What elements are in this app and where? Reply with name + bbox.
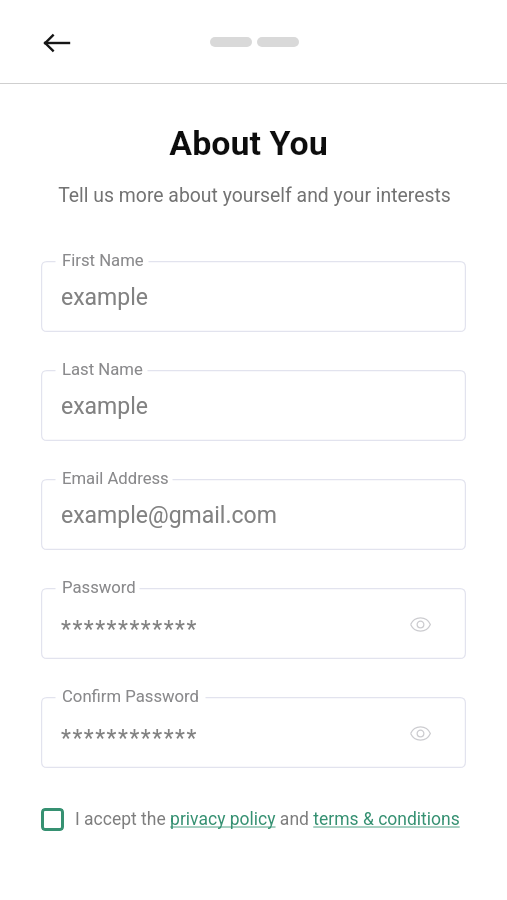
staticText: I accept the privacy policy and terms & … — [75, 809, 460, 830]
staticText: Email Address — [62, 469, 169, 489]
button[interactable]: Last Name — [41, 370, 466, 441]
staticText: First Name — [62, 251, 144, 271]
button[interactable]: Back — [35, 21, 79, 65]
staticText: Last Name — [62, 360, 143, 380]
button[interactable]: First Name — [41, 261, 466, 332]
staticText: About You — [0, 123, 502, 163]
staticText: Confirm Password — [62, 687, 199, 707]
button[interactable]: Confirm Password — [41, 697, 466, 768]
button[interactable]: Show password — [404, 717, 436, 749]
button[interactable]: Email Address — [41, 479, 466, 550]
staticText: Tell us more about yourself and your int… — [1, 184, 507, 207]
staticText: example — [61, 284, 148, 311]
button[interactable]: Password — [41, 588, 466, 659]
staticText: example — [61, 393, 148, 420]
staticText: ************ — [61, 616, 198, 643]
button[interactable]: Show password — [404, 608, 436, 640]
button[interactable]: I accept the privacy policy and terms & … — [41, 808, 460, 831]
staticText: ************ — [61, 725, 198, 752]
staticText: Password — [62, 578, 136, 598]
staticText: example@gmail.com — [61, 502, 277, 529]
